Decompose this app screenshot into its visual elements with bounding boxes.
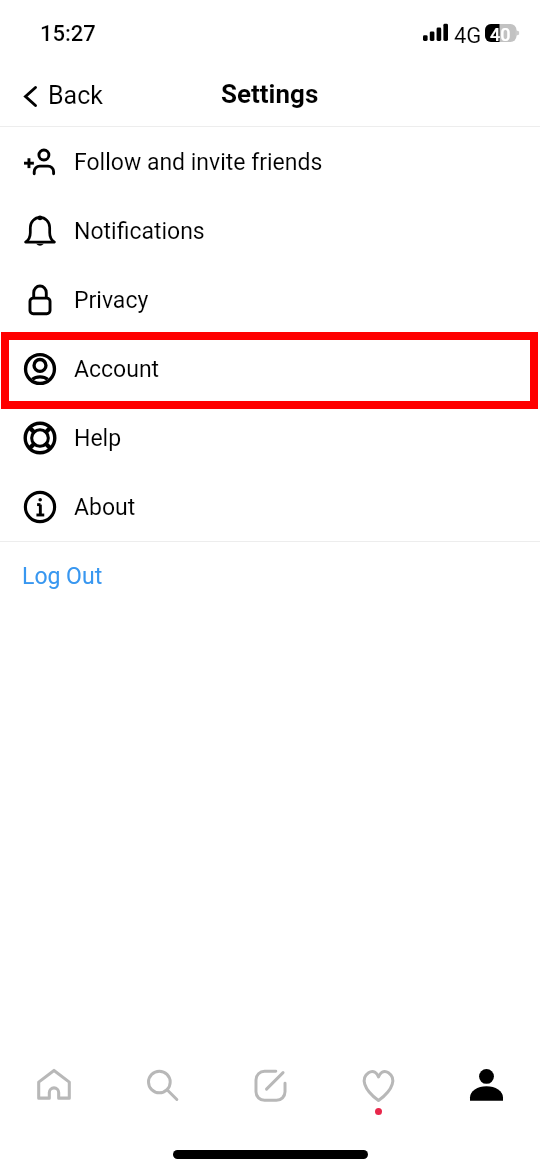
button[interactable]: Home [0, 1061, 108, 1109]
button[interactable]: Activity [324, 1061, 432, 1109]
button[interactable]: Help [0, 403, 540, 472]
staticText: Back [48, 81, 103, 110]
button[interactable]: Search [108, 1061, 216, 1109]
staticText: Help [74, 425, 122, 452]
staticText: Account [74, 356, 160, 383]
button[interactable]: Create [216, 1061, 324, 1109]
staticText: 40 [490, 24, 511, 45]
staticText: Privacy [74, 287, 149, 314]
staticText: Notifications [74, 218, 205, 245]
staticText: About [74, 494, 136, 521]
staticText: Log Out [22, 563, 103, 590]
button[interactable]: About [0, 472, 540, 541]
staticText: 15:27 [40, 21, 96, 47]
staticText: 4G [454, 23, 482, 49]
button[interactable]: Privacy [0, 265, 540, 334]
button[interactable]: Account [0, 334, 540, 403]
staticText: Follow and invite friends [74, 149, 323, 176]
button[interactable]: Follow and invite friends [0, 127, 540, 196]
button[interactable]: Back [0, 71, 117, 120]
button[interactable]: Log Out [0, 542, 540, 611]
staticText: Settings [221, 79, 319, 109]
button[interactable]: Profile [432, 1061, 540, 1109]
button[interactable]: Notifications [0, 196, 540, 265]
